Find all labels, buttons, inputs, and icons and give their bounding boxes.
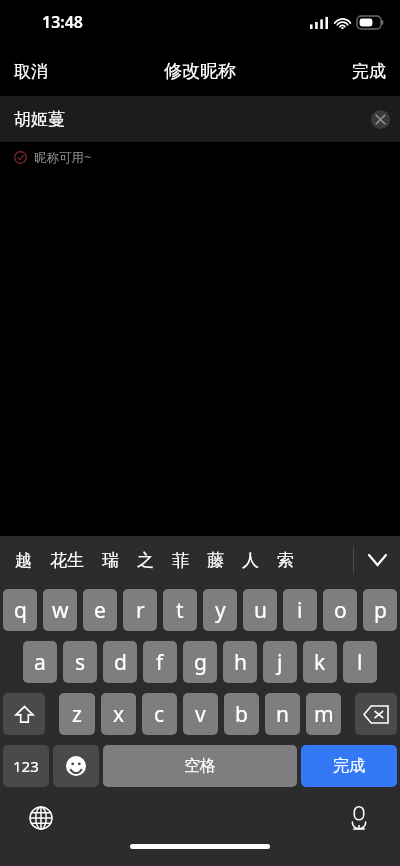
button[interactable]: t (163, 589, 197, 631)
button[interactable]: v (183, 693, 218, 735)
staticText: r (136, 596, 145, 625)
button[interactable]: Voice input (344, 803, 374, 833)
button[interactable]: 瑞 (93, 544, 128, 577)
staticText: z (72, 700, 82, 729)
staticText: w (52, 596, 69, 625)
button[interactable]: Clear text (371, 110, 390, 129)
staticText: p (374, 596, 387, 625)
button[interactable]: 完成 (338, 53, 400, 90)
button[interactable]: Hide keyboard suggestions (354, 536, 400, 584)
button[interactable]: s (63, 641, 97, 683)
button[interactable]: 越 (6, 544, 41, 577)
staticText: 索 (277, 550, 294, 571)
button[interactable]: 索 (268, 544, 303, 577)
staticText: h (234, 648, 247, 677)
staticText: u (254, 596, 267, 625)
button[interactable]: d (103, 641, 137, 683)
button[interactable]: 完成 (301, 745, 397, 787)
staticText: 花生 (50, 550, 84, 571)
staticText: 越 (15, 550, 32, 571)
button[interactable]: m (306, 693, 341, 735)
button[interactable]: 空格 (103, 745, 297, 787)
staticText: 之 (137, 550, 154, 571)
staticText: i (297, 596, 303, 625)
staticText: m (314, 700, 334, 729)
button[interactable]: w (43, 589, 77, 631)
button[interactable]: f (143, 641, 177, 683)
button[interactable]: r (123, 589, 157, 631)
staticText: b (235, 700, 248, 729)
staticText: 菲 (172, 550, 189, 571)
button[interactable]: x (101, 693, 136, 735)
button[interactable]: p (363, 589, 397, 631)
staticText: o (334, 596, 347, 625)
staticText: e (94, 596, 106, 625)
staticText: 胡姬蔓 (14, 109, 65, 130)
button[interactable]: a (23, 641, 57, 683)
button[interactable]: u (243, 589, 277, 631)
staticText: 修改昵称 (164, 60, 236, 83)
button[interactable]: 取消 (0, 53, 62, 90)
staticText: y (215, 596, 226, 625)
button[interactable]: 之 (128, 544, 163, 577)
button[interactable]: Backspace (355, 693, 397, 735)
staticText: g (194, 648, 207, 677)
staticText: 123 (13, 756, 39, 776)
button[interactable]: 藤 (198, 544, 233, 577)
staticText: k (314, 648, 326, 677)
button[interactable]: 人 (233, 544, 268, 577)
button[interactable]: n (265, 693, 300, 735)
button[interactable]: 胡姬蔓 (0, 96, 400, 142)
staticText: f (156, 648, 164, 677)
staticText: 完成 (333, 756, 365, 776)
staticText: c (154, 700, 165, 729)
staticText: q (14, 596, 27, 625)
staticText: t (176, 596, 184, 625)
button[interactable]: q (3, 589, 37, 631)
staticText: n (276, 700, 289, 729)
staticText: s (75, 648, 86, 677)
staticText: 13:48 (42, 11, 84, 33)
staticText: 取消 (14, 61, 48, 82)
button[interactable]: Change keyboard language (26, 803, 56, 833)
button[interactable]: z (59, 693, 95, 735)
button[interactable]: l (343, 641, 377, 683)
button[interactable]: Emoji (53, 745, 99, 787)
staticText: a (34, 648, 46, 677)
button[interactable]: i (283, 589, 317, 631)
button[interactable]: g (183, 641, 217, 683)
button[interactable]: 花生 (41, 544, 93, 577)
staticText: 完成 (352, 61, 386, 82)
staticText: d (114, 648, 127, 677)
staticText: 藤 (207, 550, 224, 571)
staticText: 人 (242, 550, 259, 571)
staticText: 空格 (184, 756, 216, 776)
button[interactable]: h (223, 641, 257, 683)
staticText: l (357, 648, 363, 677)
staticText: x (113, 700, 125, 729)
staticText: j (277, 648, 283, 677)
button[interactable]: 菲 (163, 544, 198, 577)
button[interactable]: k (303, 641, 337, 683)
button[interactable]: y (203, 589, 237, 631)
button[interactable]: Shift (3, 693, 45, 735)
button[interactable]: e (83, 589, 117, 631)
button[interactable]: 123 (3, 745, 49, 787)
button[interactable]: c (142, 693, 177, 735)
staticText: 昵称可用~ (34, 149, 92, 166)
button[interactable]: b (224, 693, 259, 735)
staticText: v (195, 700, 206, 729)
staticText: 瑞 (102, 550, 119, 571)
button[interactable]: o (323, 589, 357, 631)
button[interactable]: j (263, 641, 297, 683)
